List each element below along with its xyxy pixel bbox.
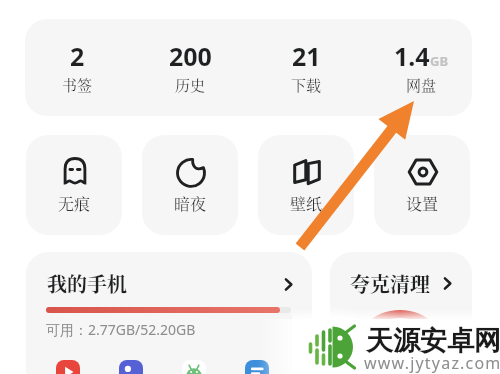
button[interactable]: 21	[274, 19, 338, 116]
staticText: 夸克清理	[350, 269, 430, 298]
staticText: 网盘	[406, 74, 437, 96]
button[interactable]: 壁纸	[258, 135, 354, 235]
button[interactable]	[119, 360, 143, 374]
staticText: 无痕	[58, 192, 91, 215]
staticText: 设置	[406, 192, 439, 215]
button[interactable]	[182, 360, 206, 374]
button[interactable]: 打开我的手机	[276, 272, 300, 296]
staticText: 21	[292, 39, 321, 73]
staticText: www.jytyaz.com	[364, 352, 500, 374]
staticText: 1.4	[394, 39, 430, 73]
staticText: 天源安卓网	[366, 324, 500, 358]
staticText: 可用：2.77GB/52.20GB	[46, 320, 196, 339]
button[interactable]: 1.4	[389, 19, 453, 116]
button[interactable]: 暗夜	[142, 135, 238, 235]
button[interactable]: 夸克清理	[330, 252, 472, 374]
button[interactable]	[56, 360, 80, 374]
staticText: 书签	[62, 74, 93, 96]
button[interactable]: 无痕	[26, 135, 122, 235]
staticText: 历史	[175, 74, 206, 96]
button[interactable]: 我的手机	[26, 252, 312, 374]
staticText: 暗夜	[174, 192, 207, 215]
button[interactable]: 设置	[374, 135, 470, 235]
button[interactable]: 2	[45, 19, 109, 116]
staticText: 壁纸	[290, 192, 323, 215]
button[interactable]: 200	[158, 19, 222, 116]
staticText: 200	[169, 39, 212, 73]
staticText: 2	[70, 39, 85, 73]
staticText: GB	[430, 52, 449, 70]
staticText: 我的手机	[47, 269, 127, 298]
button[interactable]	[245, 360, 269, 374]
staticText: 下载	[291, 74, 322, 96]
